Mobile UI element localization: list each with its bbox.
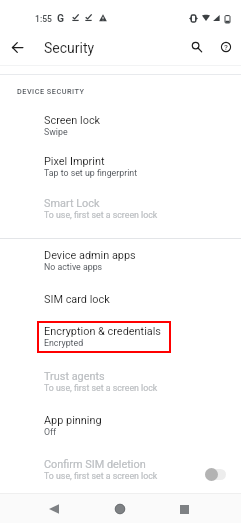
button[interactable]: App pinning <box>0 406 241 447</box>
staticText: Tap to set up fingerprint <box>44 168 138 178</box>
button[interactable]: Device admin apps <box>0 241 241 282</box>
button[interactable]: Smart Lock <box>0 189 241 230</box>
staticText: Trust agents <box>44 370 105 383</box>
staticText: G <box>57 12 65 24</box>
staticText: Confirm SIM deletion <box>44 458 146 471</box>
button[interactable]: Trust agents <box>0 362 241 403</box>
staticText: DEVICE SECURITY <box>17 87 85 96</box>
button[interactable]: Navigate up <box>5 35 30 60</box>
staticText: To use, first set a screen lock <box>44 471 158 481</box>
button[interactable]: Recent apps <box>164 493 204 523</box>
staticText: Off <box>44 427 57 437</box>
staticText: Encryption & credentials <box>44 325 161 338</box>
staticText: Security <box>44 40 95 56</box>
button[interactable]: Confirm SIM deletion <box>0 450 241 491</box>
staticText: To use, first set a screen lock <box>44 383 158 393</box>
staticText: Encrypted <box>44 338 84 348</box>
staticText: No active apps <box>44 262 103 272</box>
staticText: 1:55 <box>35 14 52 24</box>
button[interactable]: Home <box>100 493 140 523</box>
staticText: Smart Lock <box>44 197 100 210</box>
button[interactable]: Help <box>213 34 238 59</box>
staticText: Pixel Imprint <box>44 155 105 168</box>
staticText: SIM card lock <box>44 293 110 306</box>
button[interactable]: SIM card lock <box>0 285 241 316</box>
staticText: Screen lock <box>44 114 101 127</box>
button[interactable]: Screen lock <box>0 106 241 147</box>
button[interactable]: Search <box>184 34 209 59</box>
staticText: ? <box>224 43 228 52</box>
button[interactable]: Encryption & credentials <box>0 317 241 358</box>
button[interactable]: Back <box>34 493 74 523</box>
staticText: App pinning <box>44 414 102 427</box>
button[interactable]: Pixel Imprint <box>0 147 241 188</box>
staticText: Device admin apps <box>44 249 136 262</box>
staticText: Swipe <box>44 127 68 137</box>
staticText: To use, first set a screen lock <box>44 210 158 220</box>
